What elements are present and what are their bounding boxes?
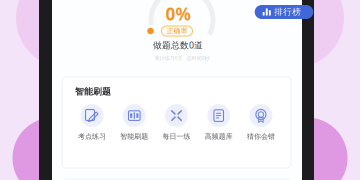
button[interactable]: 考点练习 <box>71 104 113 141</box>
staticText: 考点练习 <box>78 132 106 141</box>
button[interactable]: 每日一练 <box>155 104 198 141</box>
button[interactable]: 智能刷题 <box>113 104 155 141</box>
staticText: 高频题库 <box>205 132 233 141</box>
button[interactable]: 高频题库 <box>198 104 240 141</box>
button[interactable]: 排行榜 <box>255 5 313 19</box>
staticText: 每日一练 <box>162 132 190 141</box>
button[interactable]: 猜你会错 <box>240 104 282 141</box>
staticText: 排行榜 <box>274 7 301 17</box>
staticText: 做题总数0道 <box>153 39 203 51</box>
staticText: 智能刷题 <box>75 86 111 97</box>
staticText: 累计练习0天 总时间0秒 <box>154 54 209 62</box>
staticText: 0% <box>165 2 190 26</box>
staticText: 猜你会错 <box>247 132 275 141</box>
staticText: 正确率 <box>166 27 187 35</box>
staticText: 智能刷题 <box>120 132 148 141</box>
